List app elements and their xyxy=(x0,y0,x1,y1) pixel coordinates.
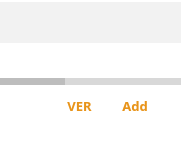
staticText: VER xyxy=(67,97,92,115)
button[interactable]: VER xyxy=(59,95,100,117)
staticText: Add xyxy=(122,97,148,115)
button[interactable]: Add xyxy=(114,95,156,117)
